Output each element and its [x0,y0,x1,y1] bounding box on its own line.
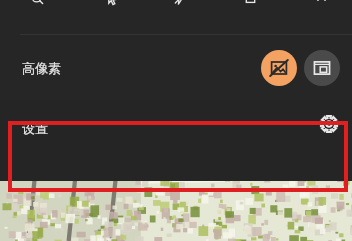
button[interactable]: Collapse [314,0,336,15]
button[interactable]: Window mode [304,50,340,86]
button[interactable]: Search [30,0,52,15]
staticText: 设置 [22,120,48,136]
button[interactable]: 高像素 [0,35,352,100]
button[interactable]: Aspect ratio [243,0,265,15]
button[interactable]: 设置 [0,100,352,181]
button[interactable]: Disable high resolution [261,50,297,86]
other: Settings [320,115,338,133]
staticText: 高像素 [22,60,61,76]
button[interactable]: Pointer [104,0,126,15]
button[interactable]: Flash off [172,0,194,15]
